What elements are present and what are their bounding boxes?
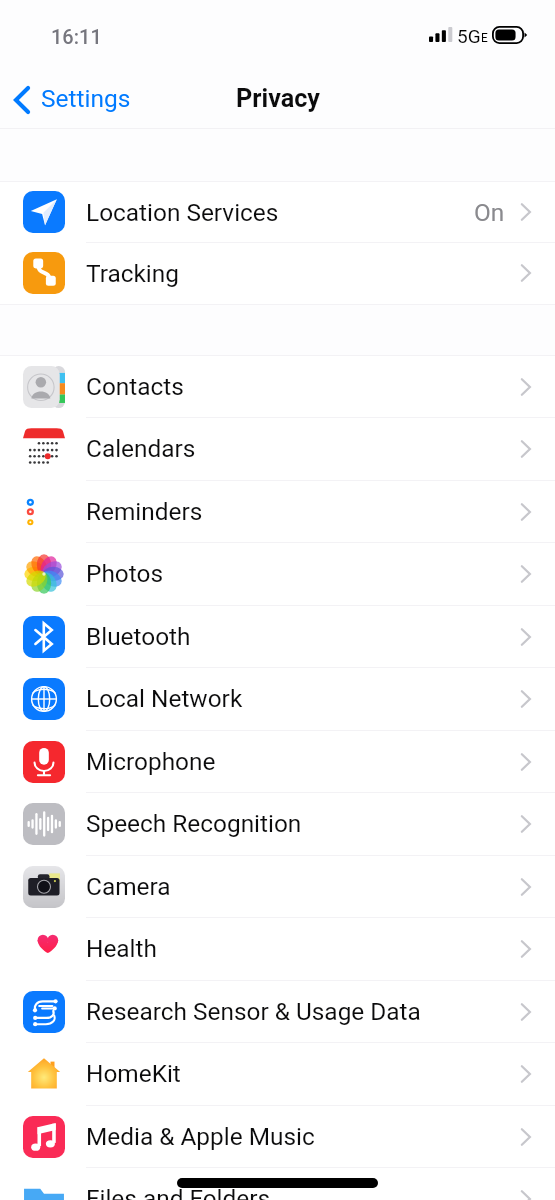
button[interactable]: Research Sensor & Usage Data <box>0 980 555 1043</box>
button[interactable]: Location Services <box>0 181 555 243</box>
staticText: 5G <box>457 25 481 47</box>
button[interactable]: HomeKit <box>0 1042 555 1105</box>
button[interactable]: Reminders <box>0 480 555 543</box>
staticText: Files and Folders <box>86 1184 271 1200</box>
staticText: Speech Recognition <box>86 809 302 838</box>
staticText: HomeKit <box>86 1059 181 1088</box>
staticText: Local Network <box>86 684 243 713</box>
button[interactable]: Photos <box>0 542 555 605</box>
staticText: Microphone <box>86 747 216 776</box>
staticText: On <box>474 198 505 227</box>
staticText: Calendars <box>86 434 196 463</box>
button[interactable]: Files and Folders <box>0 1167 555 1200</box>
staticText: Reminders <box>86 497 203 526</box>
button[interactable]: Tracking <box>0 242 555 304</box>
staticText: E <box>481 31 488 45</box>
staticText: Tracking <box>86 259 179 288</box>
button[interactable]: Bluetooth <box>0 605 555 668</box>
staticText: Camera <box>86 872 171 901</box>
button[interactable]: Media & Apple Music <box>0 1105 555 1168</box>
staticText: Research Sensor & Usage Data <box>86 997 421 1026</box>
staticText: 16:11 <box>51 25 102 48</box>
button[interactable]: Local Network <box>0 667 555 730</box>
button[interactable]: Calendars <box>0 417 555 480</box>
button[interactable]: Contacts <box>0 355 555 418</box>
staticText: Settings <box>41 84 131 113</box>
button[interactable]: Settings <box>6 79 139 120</box>
button[interactable]: Speech Recognition <box>0 792 555 855</box>
staticText: Health <box>86 934 157 963</box>
button[interactable]: Health <box>0 917 555 980</box>
staticText: Contacts <box>86 372 184 401</box>
button[interactable]: Camera <box>0 855 555 918</box>
staticText: Media & Apple Music <box>86 1122 315 1151</box>
staticText: Bluetooth <box>86 622 191 651</box>
button[interactable]: Microphone <box>0 730 555 793</box>
staticText: Privacy <box>236 84 320 114</box>
staticText: Photos <box>86 559 163 588</box>
staticText: Location Services <box>86 198 279 227</box>
